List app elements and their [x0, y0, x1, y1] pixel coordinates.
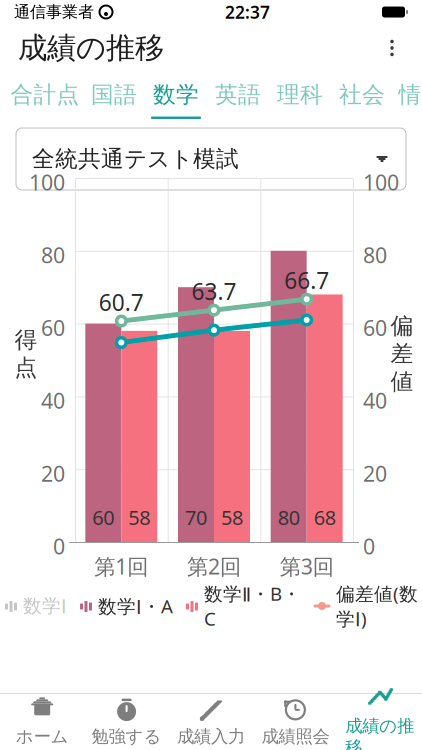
staticText: 社会	[339, 81, 385, 109]
staticText: 点	[14, 354, 37, 382]
button[interactable]: 英語	[207, 73, 269, 119]
staticText: 80	[278, 504, 300, 531]
staticText: 68	[314, 504, 336, 531]
staticText: 英語	[215, 81, 261, 109]
staticText: 0	[53, 532, 65, 560]
staticText: 偏	[390, 312, 413, 340]
button[interactable]: ホーム	[0, 694, 84, 750]
staticText: 理科	[277, 81, 323, 109]
button[interactable]: 勉強する	[84, 694, 169, 750]
staticText: 20	[41, 459, 65, 487]
staticText: 数学	[153, 81, 199, 109]
staticText: 偏差値(数学Ⅰ)	[336, 581, 418, 631]
button[interactable]: 理科	[269, 73, 331, 119]
button[interactable]: 数学Ⅱ・B・C	[185, 581, 301, 631]
staticText: 58	[221, 504, 243, 531]
button[interactable]: 国語	[83, 73, 145, 119]
staticText: 第1回	[94, 552, 148, 580]
staticText: 情	[398, 81, 421, 109]
staticText: 60	[92, 504, 114, 531]
staticText: 66.7	[284, 265, 329, 295]
staticText: 数学Ⅱ・B・C	[204, 581, 301, 631]
button[interactable]: 社会	[331, 73, 393, 119]
staticText: 80	[363, 241, 387, 269]
staticText: 差	[390, 340, 413, 368]
staticText: 20	[363, 459, 387, 487]
staticText: 40	[363, 386, 387, 415]
staticText: 60.7	[99, 287, 144, 317]
staticText: 40	[41, 386, 65, 415]
staticText: 第3回	[280, 552, 334, 580]
staticText: 成績の推移	[18, 30, 164, 66]
staticText: 国語	[91, 81, 137, 109]
staticText: 70	[185, 504, 207, 531]
button[interactable]: 偏差値(数学Ⅰ)	[313, 581, 418, 631]
staticText: 成績照会	[261, 726, 329, 747]
staticText: 60	[363, 314, 387, 342]
button[interactable]: 数学Ⅰ	[4, 594, 67, 617]
button[interactable]: 成績照会	[253, 694, 338, 750]
staticText: 58	[128, 504, 150, 531]
staticText: ホーム	[16, 726, 69, 747]
staticText: 通信事業者	[14, 2, 94, 22]
staticText: 数学Ⅰ・A	[98, 594, 173, 618]
staticText: 数学Ⅰ	[23, 594, 67, 617]
staticText: 80	[41, 241, 65, 269]
staticText: 22:37	[225, 0, 270, 23]
staticText: 合計点	[10, 81, 79, 109]
staticText: 0	[363, 532, 375, 560]
button[interactable]: 数学Ⅰ・A	[79, 594, 173, 618]
button[interactable]: 数学	[145, 73, 207, 119]
button[interactable]: 情	[393, 73, 422, 119]
staticText: 63.7	[191, 276, 236, 306]
staticText: 勉強する	[92, 726, 162, 747]
button[interactable]: 全統共通テスト模試	[16, 128, 406, 190]
staticText: 成績入力	[177, 726, 245, 747]
staticText: 値	[390, 368, 413, 395]
button[interactable]: 成績の推移	[338, 694, 422, 750]
staticText: 成績の推移	[345, 715, 414, 750]
button[interactable]: 合計点	[7, 73, 83, 119]
staticText: 全統共通テスト模試	[32, 145, 239, 173]
staticText: 60	[41, 314, 65, 342]
button[interactable]: 成績入力	[169, 694, 253, 750]
staticText: 得	[14, 326, 37, 354]
button[interactable]: その他のオプション	[372, 28, 412, 68]
staticText: 100	[29, 168, 65, 196]
staticText: 100	[363, 168, 399, 196]
staticText: 第2回	[187, 552, 241, 580]
